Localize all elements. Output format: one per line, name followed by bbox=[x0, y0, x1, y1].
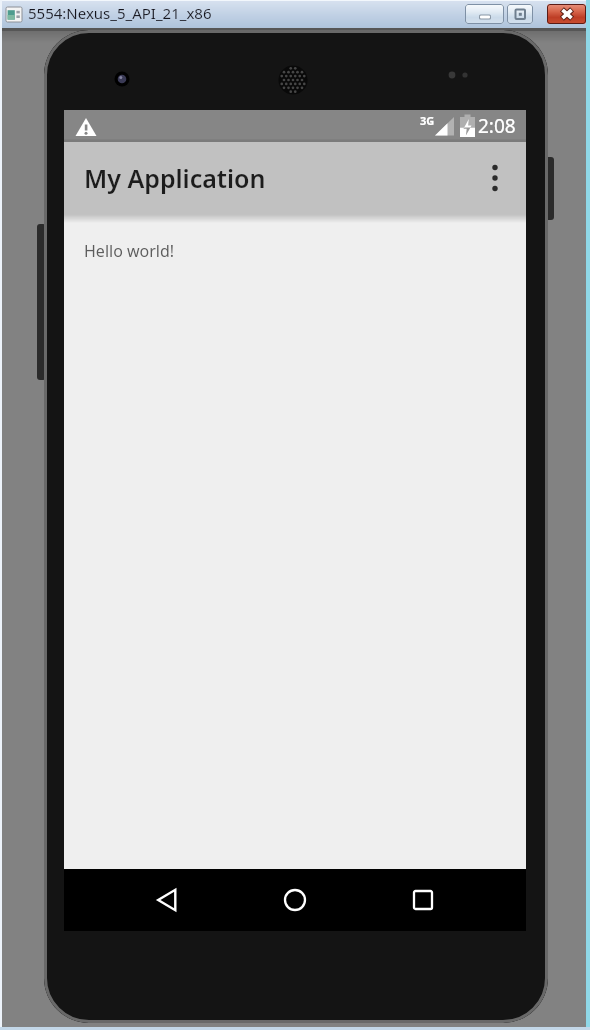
button[interactable] bbox=[507, 4, 533, 24]
staticText: My Application bbox=[84, 161, 266, 195]
button[interactable] bbox=[103, 869, 231, 931]
staticText: 3G bbox=[420, 113, 435, 128]
button[interactable] bbox=[465, 4, 504, 24]
staticText: Hello world! bbox=[84, 240, 175, 262]
staticText: 2:08 bbox=[478, 113, 516, 139]
button[interactable] bbox=[231, 869, 359, 931]
button[interactable] bbox=[547, 4, 586, 24]
button[interactable] bbox=[359, 869, 487, 931]
staticText: 5554:Nexus_5_API_21_x86 bbox=[28, 3, 212, 23]
button[interactable] bbox=[471, 154, 519, 202]
